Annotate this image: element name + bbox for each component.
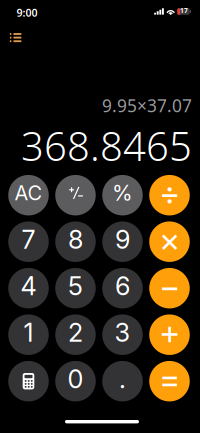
staticText: 368.8465 [21, 119, 192, 172]
button[interactable]: 7 [8, 221, 49, 262]
button[interactable]: 2 [55, 314, 96, 355]
button[interactable]: + [149, 314, 190, 355]
staticText: 9:00 [16, 5, 37, 20]
staticText: = [159, 359, 180, 399]
button[interactable]: 4 [8, 268, 49, 308]
staticText: % [112, 180, 133, 206]
button[interactable]: 8 [55, 221, 96, 262]
staticText: 7 [21, 224, 35, 255]
button[interactable]: 5 [55, 268, 96, 308]
staticText: + [159, 312, 180, 353]
staticText: . [119, 364, 126, 394]
button[interactable]: 1 [8, 314, 49, 355]
button[interactable]: 9 [102, 221, 143, 262]
staticText: 1 [23, 317, 33, 348]
staticText: 0 [67, 364, 83, 394]
staticText: 6 [115, 271, 130, 301]
staticText: 8 [68, 224, 83, 255]
button[interactable]: Plus minus [55, 175, 96, 215]
button[interactable]: AC [8, 175, 49, 215]
staticText: 9.95×37.07 [102, 94, 192, 117]
button[interactable]: − [149, 268, 190, 308]
staticText: 9 [115, 224, 130, 255]
staticText: 3 [114, 317, 130, 348]
button[interactable]: 0 [55, 361, 96, 401]
staticText: 5 [68, 271, 83, 301]
button[interactable]: History [1, 21, 27, 47]
staticText: × [159, 219, 180, 260]
staticText: 2 [68, 317, 83, 348]
staticText: 4 [20, 271, 36, 301]
button[interactable]: ÷ [149, 175, 190, 215]
button[interactable]: % [102, 175, 143, 215]
staticText: AC [14, 181, 42, 205]
button[interactable]: × [149, 221, 190, 262]
button[interactable]: 6 [102, 268, 143, 308]
staticText: 17 [180, 6, 188, 15]
staticText: − [159, 266, 180, 306]
button[interactable]: 3 [102, 314, 143, 355]
staticText: ÷ [159, 173, 180, 213]
button[interactable]: = [149, 361, 190, 401]
button[interactable]: Scientific calculator [8, 361, 49, 401]
button[interactable]: . [102, 361, 143, 401]
